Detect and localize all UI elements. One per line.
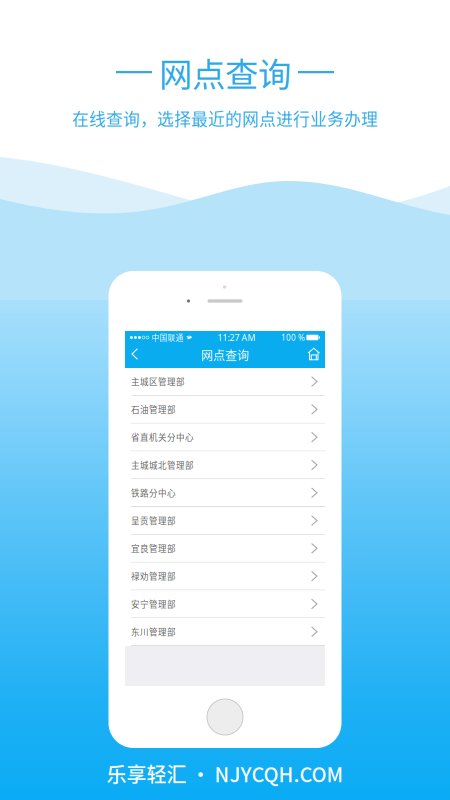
button[interactable]: 宜良管理部 xyxy=(125,535,325,563)
staticText: 主城区管理部 xyxy=(131,375,185,388)
staticText: 乐享轻汇 • NJYCQH.COM xyxy=(106,759,343,788)
button[interactable]: Home xyxy=(301,344,325,368)
staticText: 东川管理部 xyxy=(131,626,176,638)
staticText: 网点查询 xyxy=(201,346,249,364)
staticText: 在线查询，选择最近的网点进行业务办理 xyxy=(72,106,378,130)
button[interactable]: 石油管理部 xyxy=(125,396,325,424)
button[interactable]: 禄劝管理部 xyxy=(125,563,325,590)
button[interactable]: 主城区管理部 xyxy=(125,368,325,396)
button[interactable]: 安宁管理部 xyxy=(125,590,325,618)
staticText: 呈贡管理部 xyxy=(131,514,176,527)
staticText: 省直机关分中心 xyxy=(131,431,194,443)
staticText: 铁路分中心 xyxy=(131,487,176,499)
staticText: 主城城北管理部 xyxy=(131,459,194,471)
staticText: 100 % xyxy=(281,332,305,343)
button[interactable]: Back xyxy=(125,345,146,367)
button[interactable]: 呈贡管理部 xyxy=(125,507,325,535)
staticText: 宜良管理部 xyxy=(131,542,176,555)
staticText: 安宁管理部 xyxy=(131,598,176,610)
staticText: 网点查询 xyxy=(159,48,291,96)
button[interactable]: 省直机关分中心 xyxy=(125,424,325,451)
button[interactable]: 铁路分中心 xyxy=(125,479,325,507)
button[interactable]: 东川管理部 xyxy=(125,618,325,646)
staticText: 石油管理部 xyxy=(131,403,176,416)
staticText: 中国联通 xyxy=(151,332,183,343)
button[interactable]: 主城城北管理部 xyxy=(125,451,325,479)
staticText: 11:27 AM xyxy=(218,331,256,343)
staticText: 禄劝管理部 xyxy=(131,570,176,582)
